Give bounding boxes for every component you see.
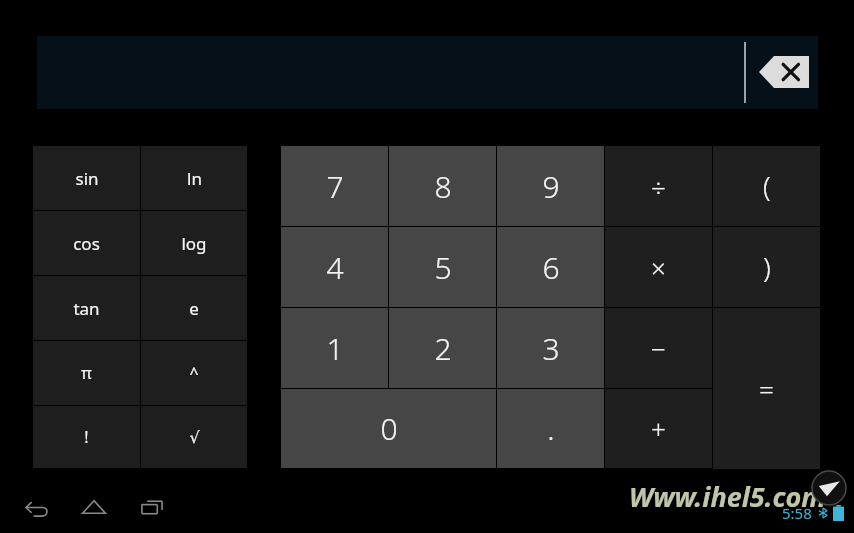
button[interactable]: cos [33,211,140,275]
staticText: 9 [542,166,560,207]
staticText: − [651,331,666,366]
button[interactable]: − [605,308,712,388]
button[interactable]: Back [12,483,60,531]
button[interactable]: sin [33,146,140,210]
button[interactable]: + [605,389,712,468]
staticText: ^ [189,362,199,384]
staticText: ÷ [651,169,666,204]
button[interactable]: π [33,341,140,405]
staticText: e [189,297,199,320]
staticText: ( [763,167,771,205]
staticText: ! [84,426,89,448]
button[interactable]: log [141,211,247,275]
staticText: + [651,411,666,446]
staticText: 7 [326,166,344,207]
button[interactable]: 4 [281,227,388,307]
button[interactable]: 5 [389,227,496,307]
staticText: 5:58 [782,503,812,523]
staticText: 5 [434,247,452,288]
staticText: 2 [434,328,452,369]
staticText: 3 [542,328,560,369]
staticText: 1 [326,328,344,369]
button[interactable]: e [141,276,247,340]
button[interactable]: ! [33,406,140,468]
staticText: 0 [380,408,398,449]
button[interactable]: ln [141,146,247,210]
staticText: 6 [542,247,560,288]
staticText: ) [763,248,771,286]
staticText: sin [75,167,99,190]
staticText: . [547,408,555,449]
staticText: tan [73,297,100,320]
staticText: 8 [434,166,452,207]
button[interactable]: √ [141,406,247,468]
button[interactable]: . [497,389,604,468]
button[interactable]: 3 [497,308,604,388]
button[interactable]: 0 [281,389,496,468]
staticText: π [81,362,92,384]
button[interactable]: 8 [389,146,496,226]
button[interactable]: 1 [281,308,388,388]
staticText: √ [189,428,200,447]
staticText: log [181,232,207,255]
button[interactable]: 2 [389,308,496,388]
button[interactable]: tan [33,276,140,340]
staticText: = [759,371,774,406]
button[interactable]: Recent apps [128,483,176,531]
button[interactable]: ^ [141,341,247,405]
button[interactable]: ÷ [605,146,712,226]
button[interactable]: ) [713,227,820,307]
button[interactable]: × [605,227,712,307]
button[interactable]: Home [70,483,118,531]
button[interactable]: 7 [281,146,388,226]
staticText: × [651,250,666,285]
staticText: Www.ihel5.com [629,478,826,515]
button[interactable]: 9 [497,146,604,226]
staticText: cos [73,232,100,255]
staticText: 4 [326,247,344,288]
button[interactable]: = [713,308,820,469]
staticText: ln [187,167,202,190]
button[interactable]: 6 [497,227,604,307]
button[interactable]: Delete [759,56,809,88]
button[interactable]: ( [713,146,820,226]
